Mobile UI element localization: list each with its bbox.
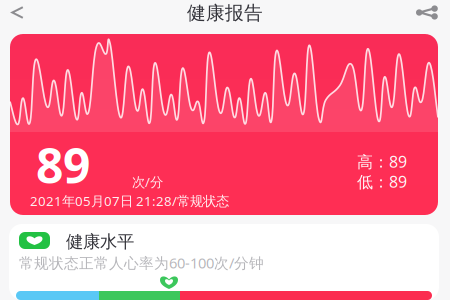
button[interactable]: Back xyxy=(0,0,41,30)
staticText: 89 xyxy=(36,133,90,197)
staticText: 低：89 xyxy=(357,171,407,192)
staticText: 2021年05月07日 21:28/常规状态 xyxy=(30,192,229,210)
staticText: 次/分 xyxy=(132,173,163,191)
button[interactable]: Share xyxy=(404,0,450,30)
staticText: 健康水平 xyxy=(66,231,134,252)
staticText: 健康报告 xyxy=(187,1,263,24)
staticText: 常规状态正常人心率为60-100次/分钟 xyxy=(19,253,264,272)
staticText: 高：89 xyxy=(357,151,407,172)
